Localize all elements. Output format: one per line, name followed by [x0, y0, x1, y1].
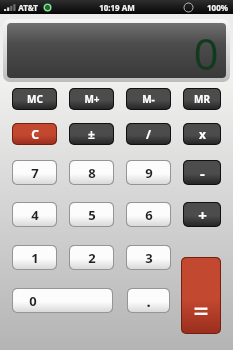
staticText: 4 — [31, 206, 39, 224]
staticText: . — [146, 291, 151, 311]
staticText: MR — [194, 92, 210, 106]
button[interactable]: ± — [70, 124, 113, 144]
staticText: - — [200, 163, 205, 183]
staticText: 10:19 AM — [99, 2, 135, 13]
staticText: / — [146, 126, 151, 142]
button[interactable]: MR — [184, 89, 220, 109]
staticText: 1 — [31, 249, 39, 267]
staticText: AT&T — [18, 2, 38, 13]
staticText: MC — [27, 92, 43, 106]
staticText: x — [199, 126, 206, 142]
button[interactable]: 1 — [13, 246, 56, 269]
button[interactable]: 0 — [13, 289, 112, 312]
button[interactable]: / — [127, 124, 170, 144]
button[interactable]: 8 — [70, 161, 113, 184]
staticText: 9 — [145, 164, 153, 182]
button[interactable]: M+ — [70, 89, 113, 109]
button[interactable]: M- — [127, 89, 170, 109]
staticText: ± — [88, 126, 95, 142]
button[interactable]: C — [13, 124, 56, 144]
button[interactable]: 3 — [127, 246, 170, 269]
staticText: M+ — [84, 92, 100, 106]
button[interactable]: 5 — [70, 203, 113, 226]
button[interactable]: 6 — [127, 203, 170, 226]
staticText: M- — [142, 92, 155, 106]
staticText: 100% — [207, 2, 228, 13]
staticText: 0 — [193, 23, 219, 78]
staticText: 2 — [88, 249, 96, 267]
staticText: 7 — [31, 164, 39, 182]
button[interactable]: . — [128, 289, 169, 312]
staticText: 3 — [145, 249, 153, 267]
staticText: + — [198, 205, 207, 225]
button[interactable]: Equals — [182, 258, 220, 333]
button[interactable]: 4 — [13, 203, 56, 226]
button[interactable]: 2 — [70, 246, 113, 269]
staticText: 0 — [29, 292, 37, 310]
staticText: C — [31, 126, 39, 142]
button[interactable]: - — [184, 161, 220, 184]
button[interactable]: 9 — [127, 161, 170, 184]
button[interactable]: x — [184, 124, 220, 144]
button[interactable]: + — [184, 203, 220, 226]
button[interactable]: MC — [13, 89, 56, 109]
button[interactable]: 7 — [13, 161, 56, 184]
staticText: 6 — [145, 206, 153, 224]
staticText: 8 — [88, 164, 96, 182]
staticText: 5 — [88, 206, 96, 224]
